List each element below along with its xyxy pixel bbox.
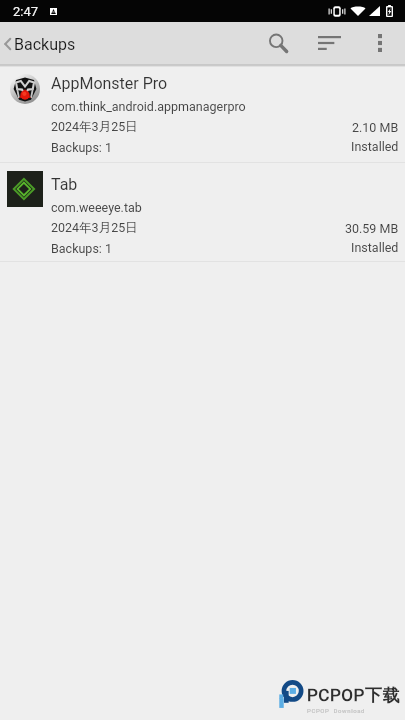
button[interactable]: Tab xyxy=(0,163,405,261)
button[interactable]: Search xyxy=(253,22,303,64)
staticText: Installed xyxy=(351,240,399,255)
staticText: PCPOP Download xyxy=(307,707,366,714)
staticText: 2024年3月25日 xyxy=(51,119,138,135)
staticText: com.think_android.appmanagerpro xyxy=(51,99,246,114)
staticText: PCPOP下载 xyxy=(307,685,401,706)
staticText: 2024年3月25日 xyxy=(51,220,138,236)
staticText: Backups xyxy=(14,35,76,54)
staticText: Backups: 1 xyxy=(51,140,112,155)
staticText: 30.59 MB xyxy=(345,221,399,236)
staticText: Installed xyxy=(351,139,399,154)
button[interactable]: More options xyxy=(355,22,405,64)
button[interactable]: AppMonster Pro xyxy=(0,67,405,162)
staticText: Backups: 1 xyxy=(51,241,112,256)
staticText: com.weeeye.tab xyxy=(51,200,142,215)
staticText: 2.10 MB xyxy=(352,120,399,135)
staticText: 2:47 xyxy=(13,4,39,19)
button[interactable]: Sort xyxy=(303,22,355,64)
staticText: AppMonster Pro xyxy=(51,74,168,93)
staticText: Tab xyxy=(51,175,78,194)
button[interactable]: Backups xyxy=(0,22,253,64)
